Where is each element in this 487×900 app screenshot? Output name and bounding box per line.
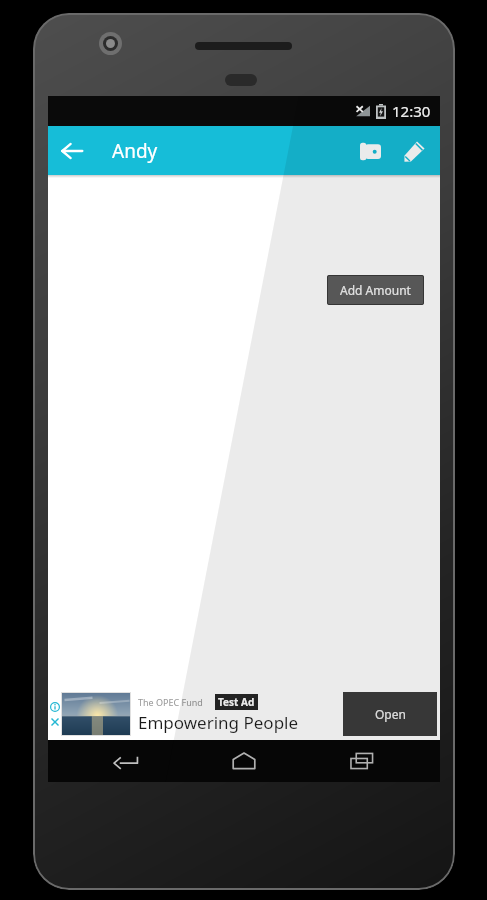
staticText: Add Amount — [340, 282, 411, 298]
button[interactable]: Home — [204, 740, 284, 782]
button[interactable]: Recent apps — [322, 740, 402, 782]
staticText: Empowering People — [138, 711, 299, 734]
button[interactable]: Add Amount — [327, 275, 424, 305]
staticText: 12:30 — [392, 101, 431, 121]
button[interactable]: Back — [86, 740, 166, 782]
staticText: Andy — [112, 138, 158, 164]
staticText: Test Ad — [218, 695, 255, 709]
button[interactable]: Navigate up — [48, 127, 96, 175]
button[interactable]: Wallet — [348, 129, 392, 173]
staticText: The OPEC Fund — [138, 696, 203, 708]
staticText: Open — [375, 706, 406, 722]
button[interactable]: The OPEC Fund — [48, 688, 440, 740]
button[interactable]: Open — [343, 692, 437, 736]
button[interactable]: Edit — [392, 129, 436, 173]
